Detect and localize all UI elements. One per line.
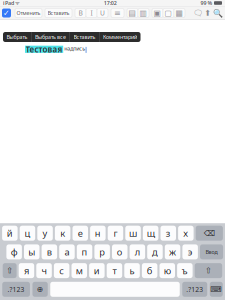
staticText: г: [113, 227, 117, 239]
button[interactable]: в: [42, 244, 57, 259]
button[interactable]: л: [130, 244, 145, 259]
button[interactable]: Comment: [193, 8, 203, 17]
staticText: 🗨: [193, 8, 203, 17]
button[interactable]: ц: [20, 226, 35, 241]
staticText: щ: [147, 227, 155, 239]
staticText: з: [166, 227, 171, 239]
button[interactable]: ч: [36, 263, 52, 278]
staticText: и: [94, 264, 100, 277]
button[interactable]: ⊕: [32, 282, 48, 297]
button[interactable]: у: [37, 226, 53, 241]
button[interactable]: о: [112, 244, 127, 259]
button[interactable]: д: [147, 244, 163, 259]
button[interactable]: Style: [111, 8, 124, 17]
staticText: Выбрать все: [35, 33, 66, 41]
button[interactable]: Align left: [127, 8, 138, 17]
button[interactable]: ⌫: [196, 226, 223, 241]
button[interactable]: н: [90, 226, 106, 241]
button[interactable]: щ: [143, 226, 158, 241]
button[interactable]: Align center: [138, 8, 149, 17]
staticText: д: [152, 246, 158, 258]
staticText: 🔍: [213, 8, 223, 17]
staticText: ᯤ: [14, 0, 20, 7]
button[interactable]: п: [77, 244, 92, 259]
staticText: 17:02: [104, 0, 117, 7]
button[interactable]: Share: [203, 8, 213, 17]
staticText: у: [43, 227, 48, 239]
button[interactable]: м: [71, 263, 87, 278]
button[interactable]: ы: [24, 244, 39, 259]
button[interactable]: з: [160, 226, 176, 241]
button[interactable]: Table: [174, 8, 185, 17]
button[interactable]: ь: [124, 263, 140, 278]
button[interactable]: р: [94, 244, 110, 259]
button[interactable]: х: [178, 226, 194, 241]
button[interactable]: б: [142, 263, 157, 278]
staticText: Выбрать: [6, 33, 27, 41]
button[interactable]: Done: [2, 8, 11, 17]
button[interactable]: ю: [159, 263, 175, 278]
staticText: ч: [41, 264, 46, 277]
button[interactable]: с: [54, 263, 69, 278]
button[interactable]: и: [89, 263, 105, 278]
staticText: ⊕: [37, 285, 44, 294]
button[interactable]: е: [72, 226, 88, 241]
staticText: ▣: [153, 8, 161, 18]
button[interactable]: Bold: [75, 8, 86, 17]
button[interactable]: ъ: [177, 263, 193, 278]
staticText: .?123: [186, 285, 203, 294]
staticText: ▤: [128, 8, 136, 18]
button[interactable]: э: [182, 244, 198, 259]
button[interactable]: Вставить: [70, 32, 99, 42]
staticText: 99 %: [200, 0, 212, 7]
staticText: ⬆: [204, 8, 211, 18]
staticText: я: [24, 264, 29, 277]
staticText: Ввод: [205, 248, 217, 255]
staticText: л: [135, 246, 140, 258]
button[interactable]: й: [2, 226, 18, 241]
button[interactable]: к: [55, 226, 70, 241]
button[interactable]: Выбрать все: [31, 32, 69, 42]
button[interactable]: Italic: [86, 8, 97, 17]
button[interactable]: а: [59, 244, 75, 259]
staticText: надпись: [64, 45, 85, 52]
button[interactable]: Вставить: [45, 8, 72, 17]
button[interactable]: .?123: [182, 282, 207, 297]
button[interactable]: List: [152, 8, 163, 17]
button[interactable]: т: [107, 263, 122, 278]
button[interactable]: ⇧: [3, 263, 17, 278]
staticText: .?123: [8, 285, 25, 294]
button[interactable]: Комментарий: [99, 32, 140, 42]
button[interactable]: Ввод: [200, 244, 223, 259]
button[interactable]: ф: [6, 244, 22, 259]
staticText: ъ: [182, 264, 188, 277]
button[interactable]: ш: [125, 226, 141, 241]
staticText: п: [82, 246, 88, 258]
button[interactable]: [50, 282, 180, 297]
button[interactable]: ж: [165, 244, 180, 259]
staticText: ⌫: [204, 229, 215, 238]
staticText: о: [117, 246, 123, 258]
staticText: м: [76, 264, 83, 277]
staticText: р: [99, 246, 105, 258]
button[interactable]: г: [108, 226, 123, 241]
button[interactable]: .?123: [2, 282, 30, 297]
staticText: ш: [129, 227, 137, 239]
staticText: I: [90, 9, 92, 17]
staticText: н: [95, 227, 101, 239]
staticText: ▥: [139, 8, 147, 18]
staticText: Вставить: [47, 9, 69, 17]
staticText: э: [188, 246, 193, 258]
staticText: ф: [11, 246, 18, 258]
button[interactable]: ⌨: [210, 282, 223, 297]
button[interactable]: Отменить: [15, 8, 42, 17]
button[interactable]: Indent: [163, 8, 174, 17]
button[interactable]: ⇧: [195, 263, 222, 278]
button[interactable]: Underline: [97, 8, 108, 17]
staticText: а: [64, 246, 69, 258]
button[interactable]: Search: [213, 8, 223, 17]
staticText: Комментарий: [103, 33, 137, 41]
button[interactable]: я: [19, 263, 34, 278]
button[interactable]: Выбрать: [3, 32, 31, 42]
